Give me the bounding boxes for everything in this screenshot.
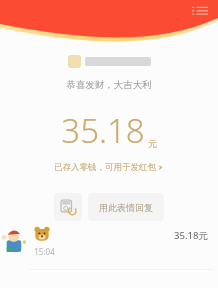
staticText: 用此表情回复 <box>99 202 153 213</box>
staticText: 35.18元 <box>174 229 208 242</box>
button[interactable]: Red packet records <box>190 4 210 18</box>
staticText: 已存入零钱，可用于发红包 <box>54 162 156 173</box>
staticText: 15:04 <box>34 246 55 257</box>
button[interactable]: 15:04 <box>2 226 208 257</box>
button[interactable]: 已存入零钱，可用于发红包 <box>54 162 164 173</box>
staticText: 35.18 <box>61 108 145 153</box>
staticText: 恭喜发财，大吉大利 <box>66 79 152 91</box>
button[interactable]: Sticker <box>54 193 82 221</box>
button[interactable]: 用此表情回复 <box>88 193 164 221</box>
staticText: 元 <box>148 138 157 149</box>
